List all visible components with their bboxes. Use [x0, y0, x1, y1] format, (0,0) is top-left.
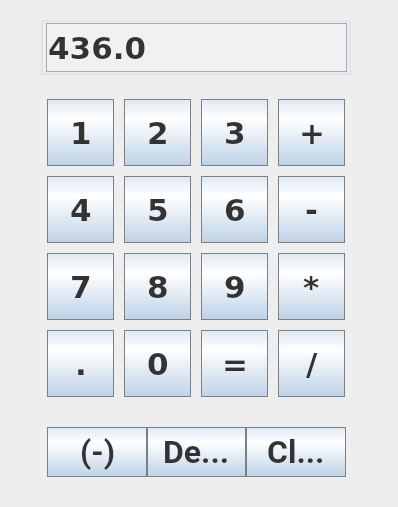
button[interactable]: 6	[201, 176, 268, 243]
staticText: 5	[147, 192, 169, 228]
button[interactable]: 9	[201, 253, 268, 320]
staticText: 8	[147, 269, 169, 305]
button[interactable]: 8	[124, 253, 191, 320]
staticText: 1	[70, 115, 92, 151]
staticText: (-)	[80, 433, 115, 471]
staticText: 9	[224, 269, 246, 305]
button[interactable]: 5	[124, 176, 191, 243]
button[interactable]: .	[47, 330, 114, 397]
staticText: 436.0	[48, 30, 147, 66]
button[interactable]: 436.0	[46, 23, 347, 72]
staticText: De...	[163, 433, 230, 471]
button[interactable]: 7	[47, 253, 114, 320]
staticText: 4	[70, 192, 92, 228]
button[interactable]: *	[278, 253, 345, 320]
button[interactable]: 2	[124, 99, 191, 166]
button[interactable]: 1	[47, 99, 114, 166]
button[interactable]: De...	[147, 427, 246, 477]
staticText: Cl...	[267, 433, 325, 471]
staticText: =	[222, 346, 248, 382]
staticText: 3	[224, 115, 246, 151]
staticText: 6	[224, 192, 246, 228]
button[interactable]: 0	[124, 330, 191, 397]
staticText: 0	[147, 346, 169, 382]
button[interactable]: +	[278, 99, 345, 166]
button[interactable]: (-)	[47, 427, 147, 477]
staticText: .	[75, 346, 87, 382]
staticText: 2	[147, 115, 169, 151]
staticText: 7	[70, 269, 92, 305]
button[interactable]: =	[201, 330, 268, 397]
button[interactable]: 3	[201, 99, 268, 166]
button[interactable]: -	[278, 176, 345, 243]
staticText: /	[306, 346, 318, 382]
staticText: *	[303, 269, 320, 305]
button[interactable]: /	[278, 330, 345, 397]
staticText: -	[305, 192, 318, 228]
button[interactable]: 4	[47, 176, 114, 243]
button[interactable]: Cl...	[246, 427, 346, 477]
staticText: +	[299, 115, 325, 151]
